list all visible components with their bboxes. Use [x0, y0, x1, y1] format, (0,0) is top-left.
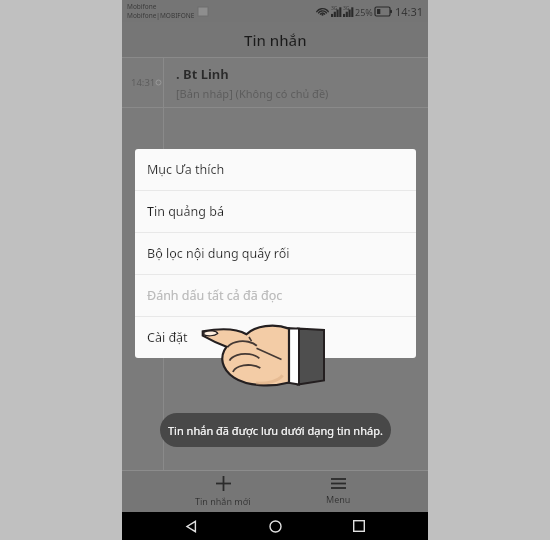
staticText: 14:31 [131, 76, 156, 89]
staticText: Tin nhắn mới [195, 495, 251, 507]
staticText: Bộ lọc nội dung quấy rối [147, 245, 290, 262]
staticText: Mobifone [127, 2, 157, 11]
button[interactable]: Recents [345, 512, 373, 540]
staticText: Tin quảng bá [147, 203, 224, 220]
button[interactable]: Bộ lọc nội dung quấy rối [135, 233, 416, 274]
button[interactable]: Mục Ưa thích [135, 149, 416, 190]
staticText: Tin nhắn [244, 30, 307, 50]
button[interactable]: Back [177, 512, 205, 540]
staticText: Cài đặt [147, 329, 188, 346]
button[interactable]: Menu [322, 473, 355, 509]
button[interactable]: Tin quảng bá [135, 191, 416, 232]
button[interactable]: Đánh dấu tất cả đã đọc [135, 275, 416, 316]
staticText: 3G [331, 5, 338, 12]
staticText: Menu [326, 493, 351, 505]
staticText: 25% [355, 6, 373, 18]
staticText: Mục Ưa thích [147, 161, 225, 178]
button[interactable]: Tin nhắn mới [191, 471, 255, 511]
staticText: 3G [343, 5, 350, 12]
button[interactable]: Home [261, 512, 289, 540]
staticText: . Bt Linh [176, 65, 229, 83]
button[interactable]: Cài đặt [135, 317, 416, 358]
staticText: Đánh dấu tất cả đã đọc [147, 287, 283, 304]
staticText: Tin nhắn đã được lưu dưới dạng tin nháp. [168, 423, 383, 438]
staticText: Mobifone|MOBIFONE [127, 11, 195, 20]
button[interactable]: 14:31 [122, 58, 428, 107]
staticText: 14:31 [395, 4, 424, 19]
staticText: [Bản nháp] (Không có chủ đề) [176, 86, 329, 101]
